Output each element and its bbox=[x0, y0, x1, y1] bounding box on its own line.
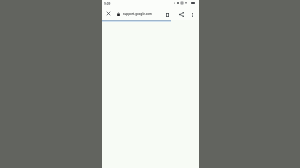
button[interactable]: Share bbox=[177, 10, 186, 19]
button[interactable]: More options bbox=[188, 10, 197, 19]
staticText: 9:09 bbox=[104, 2, 111, 6]
staticText: support.google.com bbox=[123, 12, 152, 16]
button[interactable]: Close bbox=[103, 8, 114, 19]
button[interactable]: support.google.com bbox=[115, 8, 155, 20]
button[interactable]: Open in browser bbox=[163, 10, 172, 19]
